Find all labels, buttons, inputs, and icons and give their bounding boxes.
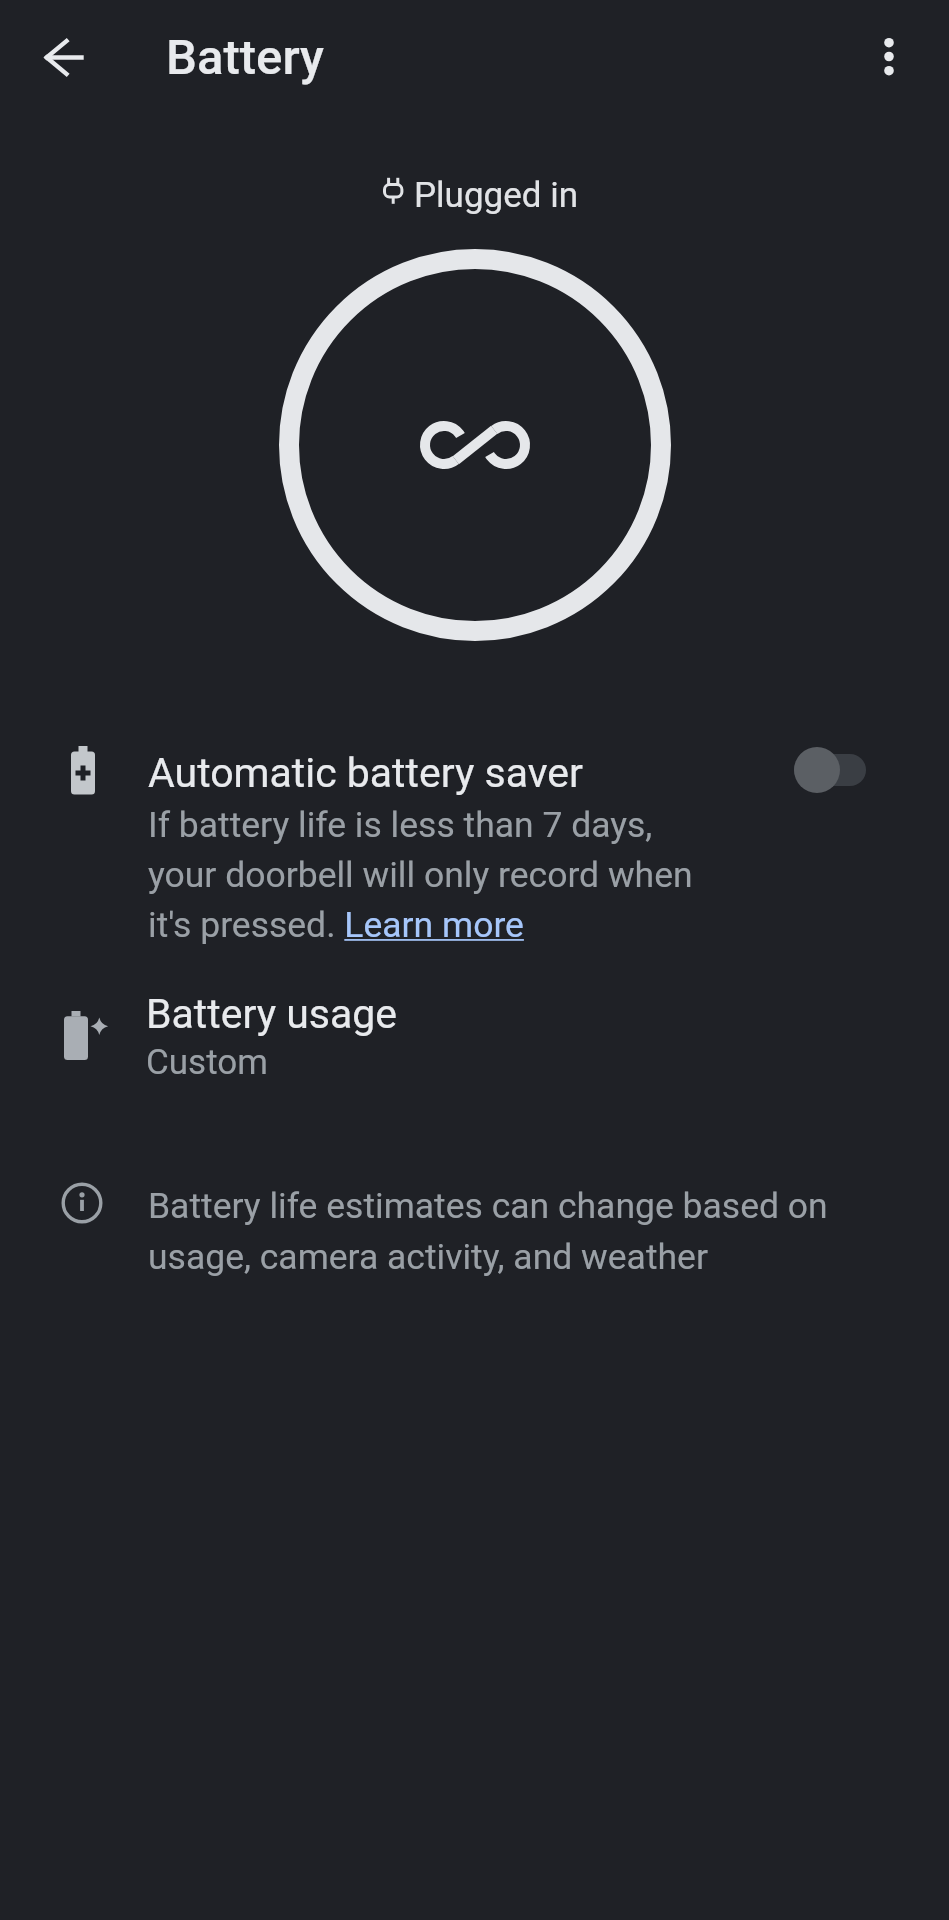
button[interactable] — [859, 27, 919, 87]
staticText: Battery — [166, 29, 324, 86]
staticText: Battery usage — [146, 990, 398, 1038]
button[interactable] — [790, 744, 874, 796]
staticText: If battery life is less than 7 days, you… — [148, 804, 693, 946]
button[interactable] — [36, 27, 96, 87]
staticText: Battery life estimates can change based … — [148, 1185, 828, 1278]
staticText: Custom — [146, 1042, 268, 1083]
button[interactable]: Battery usage — [130, 975, 780, 1100]
staticText: Automatic battery saver — [148, 749, 583, 797]
staticText: Plugged in — [414, 175, 579, 216]
button[interactable]: Automatic battery saver — [130, 735, 780, 955]
